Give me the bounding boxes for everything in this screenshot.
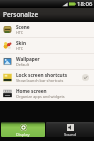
staticText: Sound (64, 132, 77, 137)
staticText: Skin (16, 40, 26, 46)
staticText: HTC (16, 30, 24, 35)
staticText: Personalize (3, 10, 39, 19)
staticText: Home screen (16, 88, 47, 94)
button[interactable]: Display (1, 122, 45, 137)
staticText: Wallpaper (16, 56, 40, 62)
button[interactable]: Scene (0, 22, 94, 37)
staticText: Default (16, 62, 30, 67)
staticText: Scene (16, 24, 30, 30)
staticText: Organize apps and widgets (16, 94, 65, 99)
button[interactable]: Wallpaper (0, 54, 94, 69)
staticText: Display (16, 132, 30, 137)
staticText: Lock screen shortcuts (16, 72, 68, 78)
button[interactable]: Home screen (0, 86, 94, 101)
staticText: 18:06 (77, 0, 93, 8)
button[interactable]: Sound (46, 122, 94, 137)
button[interactable]: Personalize (0, 8, 94, 22)
staticText: HTC (16, 46, 24, 51)
button[interactable]: Skin (0, 38, 94, 53)
staticText: Show launch bar shortcuts (16, 78, 64, 83)
button[interactable]: Toggle lock screen shortcuts (82, 74, 89, 81)
button[interactable]: Lock screen shortcuts (0, 70, 94, 85)
